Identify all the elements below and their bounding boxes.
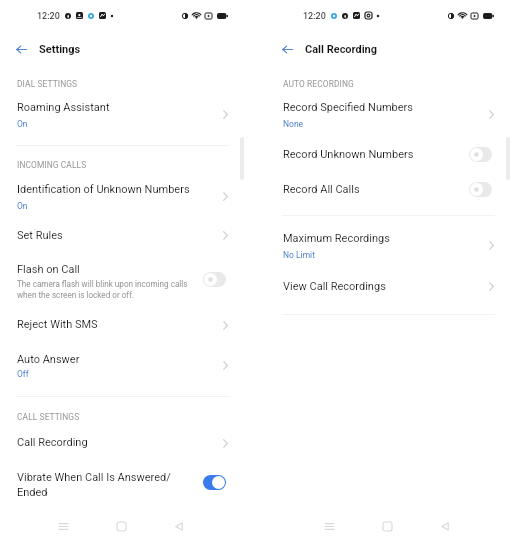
button[interactable]: Home bbox=[108, 513, 134, 539]
staticText: None bbox=[283, 119, 304, 129]
staticText: INCOMING CALLS bbox=[17, 160, 87, 170]
button[interactable]: Toggle bbox=[203, 272, 226, 287]
staticText: Call Recording bbox=[305, 43, 378, 56]
staticText: On bbox=[17, 119, 28, 129]
button[interactable]: Back bbox=[7, 37, 35, 62]
staticText: Flash on Call bbox=[17, 263, 80, 276]
button[interactable]: Back bbox=[166, 513, 192, 539]
staticText: Set Rules bbox=[17, 229, 63, 242]
button[interactable]: Home bbox=[374, 513, 400, 539]
staticText: Vibrate When Call Is Answered/ Ended bbox=[17, 471, 171, 499]
button[interactable]: Toggle bbox=[469, 182, 492, 197]
staticText: No Limit bbox=[283, 250, 315, 260]
staticText: DIAL SETTINGS bbox=[17, 79, 78, 89]
staticText: Settings bbox=[39, 43, 81, 56]
staticText: Call Recording bbox=[17, 436, 88, 449]
button[interactable] bbox=[258, 142, 517, 176]
staticText: Record Specified Numbers bbox=[283, 101, 414, 114]
button[interactable]: Toggle bbox=[469, 147, 492, 162]
button[interactable] bbox=[0, 466, 250, 510]
staticText: Record All Calls bbox=[283, 183, 360, 196]
staticText: Reject With SMS bbox=[17, 318, 98, 331]
button[interactable] bbox=[258, 275, 517, 309]
button[interactable] bbox=[0, 430, 250, 464]
button[interactable] bbox=[0, 256, 250, 304]
button[interactable] bbox=[258, 94, 517, 134]
staticText: Record Unknown Numbers bbox=[283, 148, 414, 161]
staticText: 12:20 bbox=[303, 11, 326, 22]
staticText: Roaming Assistant bbox=[17, 101, 110, 114]
button[interactable]: Back bbox=[273, 37, 301, 62]
button[interactable]: Back bbox=[432, 513, 458, 539]
button[interactable] bbox=[0, 94, 250, 134]
staticText: 12:20 bbox=[37, 11, 60, 22]
button[interactable] bbox=[0, 310, 250, 344]
button[interactable]: Recent apps bbox=[316, 513, 342, 539]
button[interactable]: Recent apps bbox=[50, 513, 76, 539]
button[interactable] bbox=[258, 177, 517, 211]
button[interactable] bbox=[0, 346, 250, 386]
staticText: On bbox=[17, 201, 28, 211]
button[interactable]: Toggle bbox=[203, 475, 226, 490]
button[interactable] bbox=[0, 222, 250, 256]
staticText: The camera flash will blink upon incomin… bbox=[17, 279, 188, 300]
staticText: AUTO RECORDING bbox=[283, 79, 354, 89]
staticText: CALL SETTINGS bbox=[17, 412, 80, 422]
button[interactable] bbox=[0, 176, 250, 216]
staticText: Maximum Recordings bbox=[283, 232, 390, 245]
staticText: Off bbox=[17, 369, 29, 379]
button[interactable] bbox=[258, 228, 517, 268]
staticText: Auto Answer bbox=[17, 353, 80, 366]
staticText: View Call Recordings bbox=[283, 280, 386, 293]
staticText: Identification of Unknown Numbers bbox=[17, 183, 190, 196]
